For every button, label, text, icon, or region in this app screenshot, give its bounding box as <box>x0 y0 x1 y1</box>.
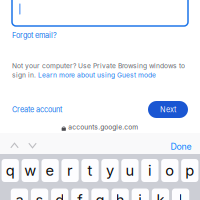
button[interactable]: Create account <box>12 105 62 114</box>
staticText: sign in. <box>12 71 36 79</box>
button[interactable]: s <box>31 188 48 200</box>
staticText: q <box>6 162 15 179</box>
staticText: Learn more about using Guest mode <box>38 71 156 79</box>
staticText: k <box>156 191 164 200</box>
staticText: e <box>46 162 55 179</box>
staticText: d <box>55 191 64 200</box>
button[interactable]: Done <box>167 133 194 154</box>
button[interactable]: t <box>81 159 99 182</box>
button[interactable]: i <box>141 159 158 182</box>
button[interactable]: d <box>51 188 68 200</box>
button[interactable]: p <box>181 159 198 182</box>
staticText: accounts.google.com <box>68 123 138 131</box>
staticText: Next <box>160 105 176 114</box>
button[interactable]: Next <box>148 101 188 118</box>
staticText: t <box>87 162 92 179</box>
button[interactable]: w <box>21 159 39 182</box>
staticText: j <box>138 191 142 200</box>
staticText: h <box>116 191 125 200</box>
button[interactable]: k <box>152 188 169 200</box>
staticText: g <box>95 191 104 200</box>
staticText: u <box>125 162 134 179</box>
button[interactable]: o <box>161 159 178 182</box>
button[interactable]: r <box>61 159 79 182</box>
button[interactable]: q <box>2 159 19 182</box>
staticText: p <box>185 162 194 179</box>
button[interactable]: l <box>172 188 189 200</box>
staticText: y <box>106 162 114 179</box>
staticText: Done <box>170 141 191 152</box>
staticText: Forgot email? <box>12 31 57 40</box>
button[interactable]: y <box>101 159 119 182</box>
staticText: l <box>179 191 183 200</box>
staticText: w <box>24 162 36 179</box>
button[interactable]: h <box>111 188 129 200</box>
staticText: Create account <box>12 105 62 114</box>
staticText: f <box>77 191 82 200</box>
staticText: i <box>148 162 152 179</box>
button[interactable]: a <box>11 188 28 200</box>
button[interactable]: Forgot email? <box>12 31 57 40</box>
staticText: o <box>165 162 174 179</box>
button[interactable]: u <box>121 159 139 182</box>
button[interactable]: Learn more about using Guest mode <box>38 71 156 79</box>
button[interactable]: j <box>132 188 149 200</box>
staticText: s <box>35 191 43 200</box>
button[interactable]: f <box>71 188 88 200</box>
button[interactable]: Next field <box>23 133 41 154</box>
button[interactable]: Previous field <box>5 133 23 154</box>
button[interactable]: e <box>41 159 59 182</box>
button[interactable]: g <box>91 188 109 200</box>
staticText: r <box>67 162 73 179</box>
staticText: a <box>15 191 23 200</box>
staticText: Not your computer? Use Private Browsing … <box>12 62 185 70</box>
